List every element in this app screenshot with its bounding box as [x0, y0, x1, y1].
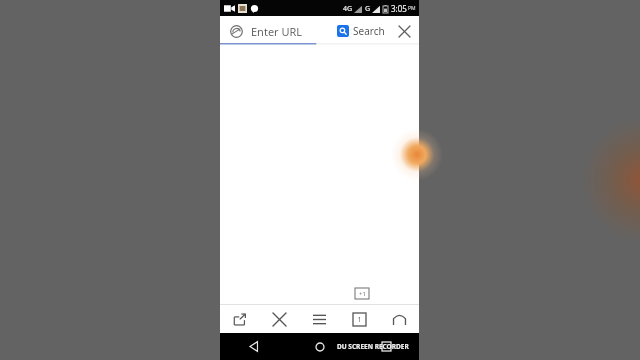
button[interactable]: Search [335, 20, 387, 42]
staticText: G [365, 4, 371, 14]
staticText: 4G [343, 4, 353, 14]
staticText: 1 [357, 315, 362, 325]
button[interactable]: Close [393, 20, 415, 42]
staticText: +1 [359, 290, 366, 298]
button[interactable]: Home [287, 333, 353, 360]
button[interactable]: Share [220, 305, 259, 333]
button[interactable]: Stop [259, 305, 299, 333]
button[interactable]: Back [220, 333, 287, 360]
staticText: PM [408, 5, 416, 12]
button[interactable]: New tab [355, 288, 369, 299]
button[interactable]: Page info [226, 21, 246, 41]
staticText: DU SCREEN RECORDER [337, 342, 409, 351]
staticText: Search [353, 24, 385, 38]
button[interactable]: Menu [299, 305, 339, 333]
staticText: 3:05 [391, 3, 407, 14]
button[interactable]: Recent apps [353, 333, 419, 360]
button[interactable]: Tabs [339, 305, 379, 333]
button[interactable]: Home [379, 305, 419, 333]
staticText: Enter URL [251, 24, 303, 39]
